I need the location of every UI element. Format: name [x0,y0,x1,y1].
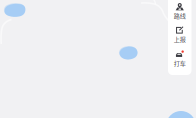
staticText: 路线 [174,11,186,20]
staticText: 打车 [174,59,186,67]
button[interactable]: 路线 [168,0,191,23]
button[interactable]: 上报 [168,23,191,47]
button[interactable]: 打车 [168,47,191,71]
staticText: 上报 [174,35,186,43]
